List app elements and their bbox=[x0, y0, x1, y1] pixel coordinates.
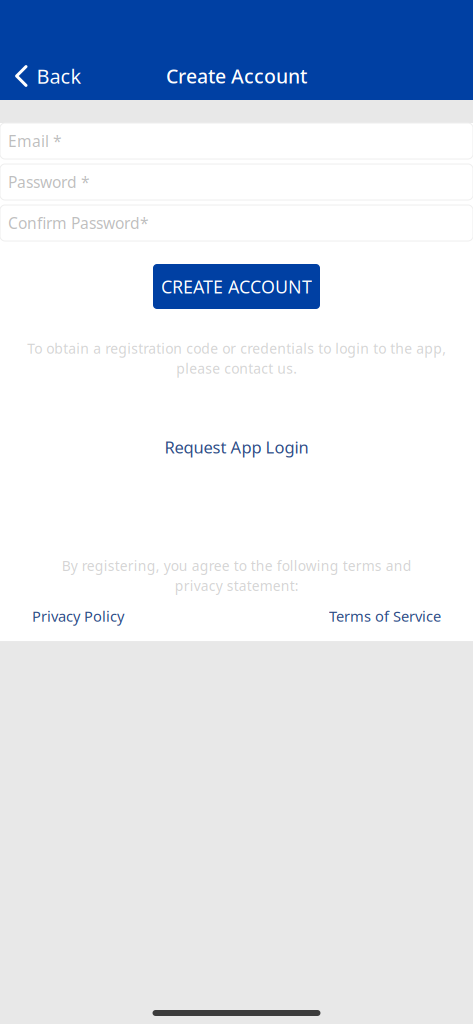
button[interactable]: Confirm Password* bbox=[0, 205, 473, 241]
staticText: Password * bbox=[8, 171, 90, 193]
staticText: Request App Login bbox=[164, 436, 308, 458]
staticText: Create Account bbox=[166, 63, 307, 89]
button[interactable]: Back bbox=[0, 54, 92, 98]
staticText: Email * bbox=[8, 130, 62, 152]
button[interactable]: Request App Login bbox=[152, 430, 320, 464]
button[interactable]: Privacy Policy bbox=[32, 601, 124, 631]
button[interactable]: CREATE ACCOUNT bbox=[153, 264, 320, 309]
button[interactable]: Email * bbox=[0, 123, 473, 159]
staticText: Confirm Password* bbox=[8, 212, 149, 234]
staticText: Terms of Service bbox=[329, 606, 441, 626]
button[interactable]: Password * bbox=[0, 164, 473, 200]
button[interactable]: Terms of Service bbox=[329, 601, 441, 631]
staticText: CREATE ACCOUNT bbox=[161, 274, 312, 299]
staticText: Privacy Policy bbox=[32, 606, 124, 626]
staticText: To obtain a registration code or credent… bbox=[27, 339, 446, 378]
staticText: Back bbox=[37, 62, 82, 90]
staticText: By registering, you agree to the followi… bbox=[61, 556, 411, 595]
